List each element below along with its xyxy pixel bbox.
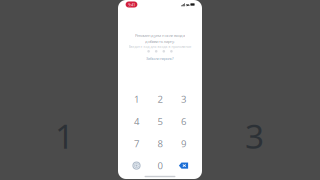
staticText: 0 — [157, 159, 162, 172]
staticText: 2 — [157, 92, 162, 106]
staticText: 7 — [134, 137, 139, 150]
staticText: 3 — [245, 113, 264, 158]
button[interactable]: 5 — [148, 112, 172, 130]
staticText: 1 — [55, 113, 74, 158]
staticText: Забыли пароль? — [146, 56, 174, 61]
button[interactable]: 6 — [172, 112, 195, 130]
button[interactable]: 3 — [172, 90, 195, 108]
button[interactable]: 7 — [125, 134, 148, 152]
staticText: 1 — [134, 92, 139, 106]
staticText: 6 — [181, 115, 186, 128]
staticText: 8 — [157, 137, 162, 150]
button[interactable]: 0 — [148, 157, 172, 175]
button[interactable]: 9 — [172, 134, 195, 152]
button[interactable]: 2 — [148, 90, 172, 108]
button[interactable]: 4 — [125, 112, 148, 130]
staticText: добавить карту. — [145, 39, 175, 44]
staticText: 3 — [181, 92, 186, 106]
staticText: 4 — [134, 115, 139, 128]
staticText: 9:41 — [128, 2, 135, 7]
button[interactable]: 8 — [148, 134, 172, 152]
staticText: Рекомендуем после входа — [135, 33, 185, 38]
button[interactable]: Delete — [172, 157, 195, 175]
staticText: 5 — [157, 115, 162, 128]
button[interactable]: Face ID — [125, 157, 148, 175]
staticText: Введите код для входа в приложение — [128, 44, 191, 49]
button[interactable]: 1 — [125, 90, 148, 108]
staticText: 9 — [181, 137, 186, 150]
button[interactable]: Забыли пароль? — [118, 0, 202, 6]
